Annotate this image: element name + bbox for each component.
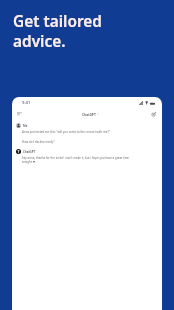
staticText: ChatGPT (82, 112, 96, 116)
staticText: hey anna, thanks for the invite! i can't… (22, 156, 132, 164)
staticText: Me (23, 124, 28, 128)
button[interactable]: ChatGPT (82, 112, 99, 116)
staticText: 9:41 (22, 100, 31, 106)
button[interactable]: New chat (149, 109, 158, 118)
button[interactable]: Menu (15, 109, 24, 118)
staticText: Anna just texted me this: "will you come… (22, 130, 110, 134)
staticText: How do I decline nicely? (22, 140, 55, 144)
staticText: ChatGPT (23, 150, 36, 154)
staticText: Get tailored advice. (13, 11, 102, 52)
